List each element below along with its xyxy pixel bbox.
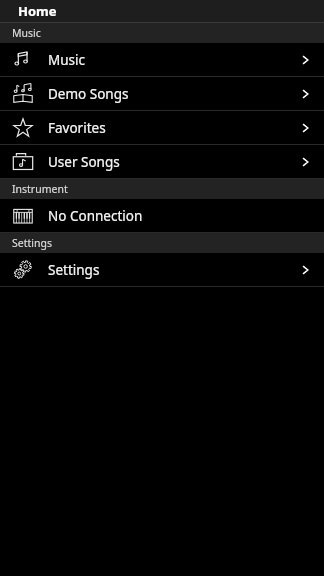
staticText: Settings [48,261,298,279]
staticText: User Songs [48,153,298,171]
staticText: Favorites [48,119,298,137]
staticText: Music [48,51,298,69]
button[interactable]: Settings [0,253,324,286]
button[interactable]: Demo Songs [0,77,324,110]
staticText: Demo Songs [48,85,298,103]
staticText: Home [18,2,57,20]
staticText: Music [12,26,41,40]
button[interactable]: Favorites [0,111,324,144]
button[interactable]: User Songs [0,145,324,178]
staticText: No Connection [48,207,312,225]
button[interactable]: No Connection [0,199,324,232]
staticText: Settings [12,236,52,250]
button[interactable]: Music [0,43,324,76]
staticText: Instrument [12,182,68,196]
